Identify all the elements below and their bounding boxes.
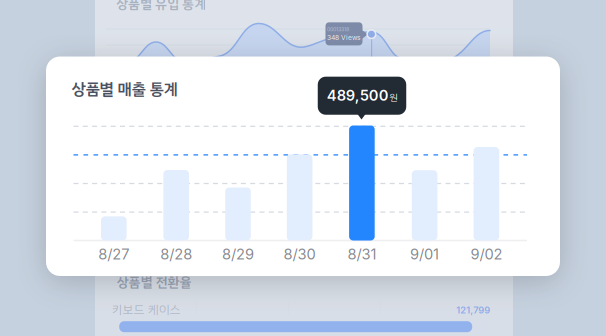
staticText: 8/27 xyxy=(98,245,129,263)
staticText: 상품별 유입 통계 xyxy=(116,0,206,14)
staticText: 키보드 케이스 xyxy=(112,301,181,319)
staticText: 8/28 xyxy=(160,245,192,263)
staticText: 상품별 전환율 xyxy=(117,272,192,292)
staticText: 9/02 xyxy=(470,245,502,263)
staticText: 원 xyxy=(389,91,397,105)
staticText: 상품별 매출 통계 xyxy=(72,77,178,101)
staticText: 8/29 xyxy=(222,245,254,263)
staticText: 8/31 xyxy=(347,245,376,263)
staticText: 00013318 xyxy=(327,26,349,33)
staticText: 8/30 xyxy=(284,245,316,263)
staticText: 121,799 xyxy=(456,304,490,316)
staticText: 9/01 xyxy=(410,245,439,263)
staticText: 348 Views xyxy=(327,33,361,42)
staticText: 489,500 xyxy=(327,87,389,104)
